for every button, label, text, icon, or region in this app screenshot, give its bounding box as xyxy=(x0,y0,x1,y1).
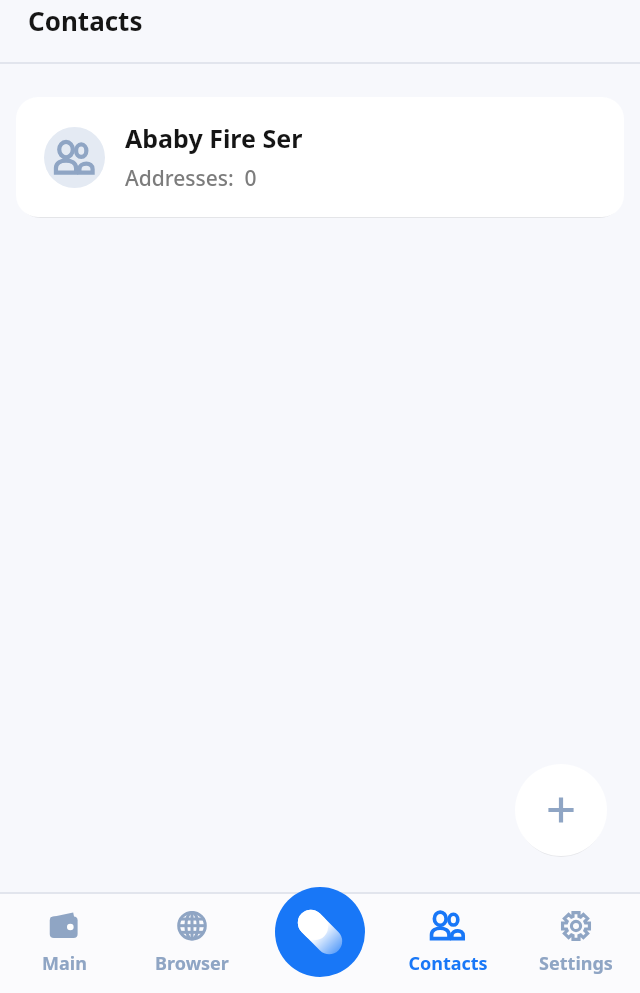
button[interactable]: Scan xyxy=(275,887,365,977)
staticText: Addresses: 0 xyxy=(125,164,257,193)
staticText: Settings xyxy=(539,951,613,976)
button[interactable]: Main xyxy=(0,892,128,993)
button[interactable]: Contacts xyxy=(384,892,512,993)
button[interactable]: Browser xyxy=(128,892,256,993)
staticText: Main xyxy=(42,951,87,976)
staticText: Browser xyxy=(155,951,229,976)
button[interactable]: Add contact xyxy=(515,764,607,856)
button[interactable]: Ababy Fire Ser xyxy=(16,97,624,217)
button[interactable]: Settings xyxy=(512,892,640,993)
staticText: Contacts xyxy=(408,951,488,976)
staticText: Contacts xyxy=(28,3,143,38)
staticText: Ababy Fire Ser xyxy=(125,121,303,155)
